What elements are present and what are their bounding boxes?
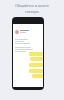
staticText: Общайтесь и шлите — [15, 3, 49, 8]
button[interactable]: App preview — [12, 17, 44, 90]
staticText: стикеры — [25, 9, 39, 14]
